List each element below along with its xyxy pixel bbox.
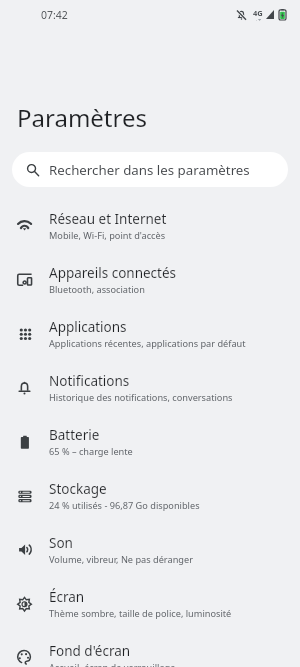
staticText: 65 % – charge lente bbox=[49, 445, 133, 458]
staticText: Thème sombre, taille de police, luminosi… bbox=[49, 607, 232, 620]
button[interactable]: Rechercher dans les paramètres bbox=[12, 152, 288, 187]
staticText: Rechercher dans les paramètres bbox=[49, 161, 250, 179]
button[interactable]: Stockage bbox=[0, 469, 300, 523]
staticText: Notifications bbox=[49, 372, 130, 390]
staticText: Paramètres bbox=[17, 101, 147, 131]
staticText: 07:42 bbox=[41, 8, 68, 22]
button[interactable]: Notifications bbox=[0, 361, 300, 415]
button[interactable]: Son bbox=[0, 523, 300, 577]
staticText: 24 % utilisés - 96,87 Go disponibles bbox=[49, 499, 200, 512]
button[interactable]: Batterie bbox=[0, 415, 300, 469]
staticText: Stockage bbox=[49, 480, 107, 498]
button[interactable]: Écran bbox=[0, 577, 300, 631]
button[interactable]: Réseau et Internet bbox=[0, 199, 300, 253]
staticText: Fond d'écran bbox=[49, 642, 131, 660]
staticText: Applications récentes, applications par … bbox=[49, 337, 246, 350]
staticText: Mobile, Wi-Fi, point d'accès bbox=[49, 229, 166, 242]
staticText: Réseau et Internet bbox=[49, 210, 167, 228]
staticText: Accueil, écran de verrouillage bbox=[49, 661, 176, 667]
button[interactable]: Fond d'écran bbox=[0, 631, 300, 667]
staticText: Son bbox=[49, 534, 73, 552]
staticText: Appareils connectés bbox=[49, 264, 177, 282]
staticText: 4G bbox=[253, 8, 263, 18]
staticText: Batterie bbox=[49, 426, 100, 444]
staticText: Historique des notifications, conversati… bbox=[49, 391, 233, 404]
staticText: Bluetooth, association bbox=[49, 283, 145, 296]
staticText: Applications bbox=[49, 318, 127, 336]
button[interactable]: Applications bbox=[0, 307, 300, 361]
button[interactable]: Appareils connectés bbox=[0, 253, 300, 307]
staticText: Écran bbox=[49, 588, 85, 606]
staticText: Volume, vibreur, Ne pas déranger bbox=[49, 553, 193, 566]
